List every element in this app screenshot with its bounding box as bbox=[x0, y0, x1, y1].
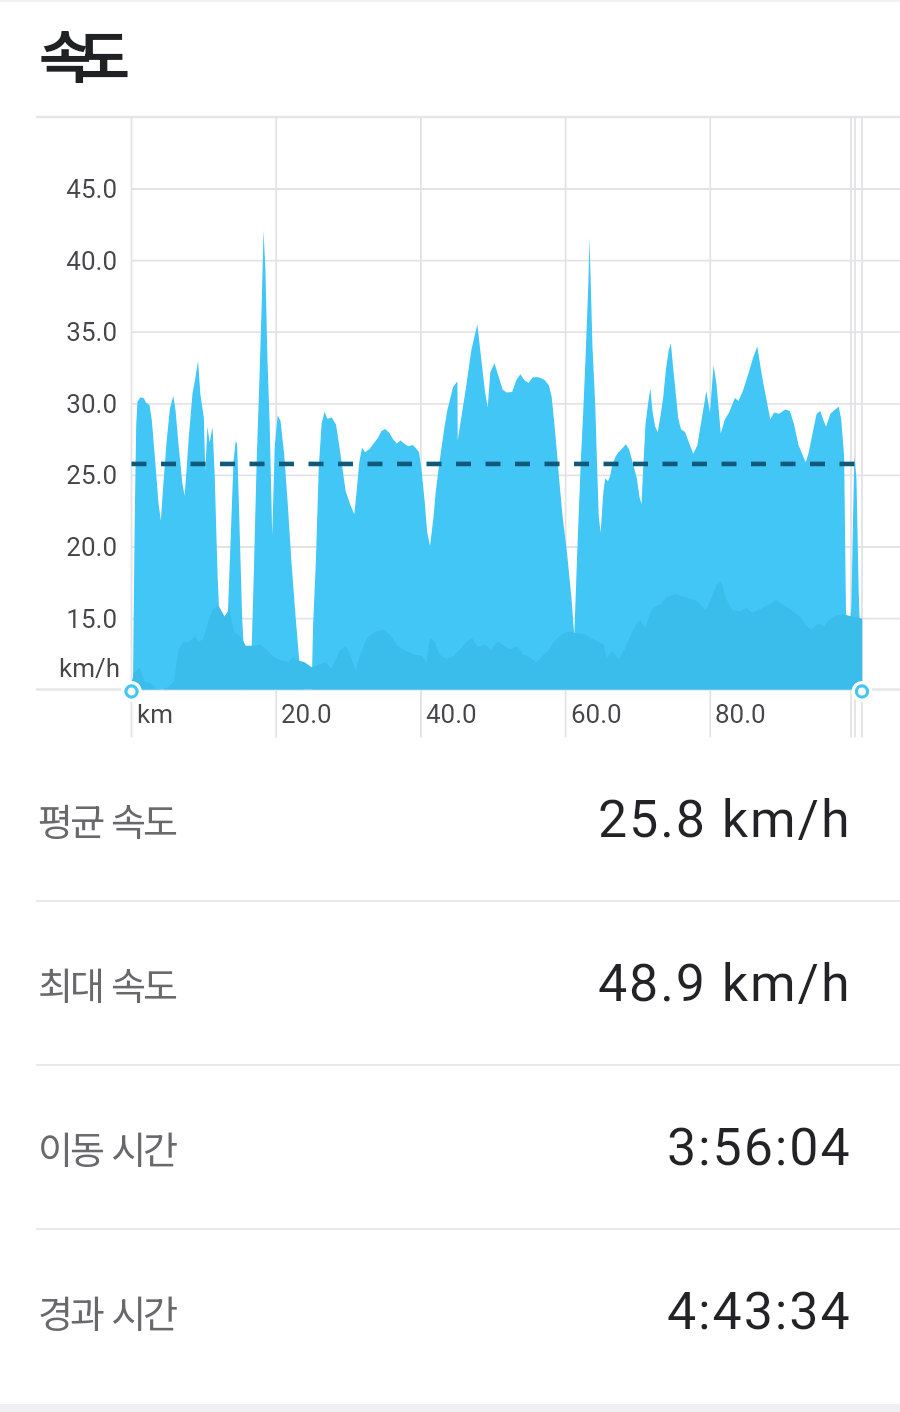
staticText: 25.8 km/h bbox=[598, 789, 852, 850]
staticText: 60.0 bbox=[571, 699, 622, 729]
staticText: km bbox=[137, 699, 173, 729]
staticText: 35.0 bbox=[66, 317, 117, 347]
staticText: 이동 bbox=[38, 1120, 102, 1175]
staticText: 25.0 bbox=[66, 460, 117, 490]
staticText: 30.0 bbox=[66, 389, 117, 419]
staticText: 40.0 bbox=[66, 246, 117, 276]
staticText: 4:43:34 bbox=[667, 1281, 852, 1342]
staticText: 속도 bbox=[39, 12, 116, 95]
staticText: 48.9 km/h bbox=[598, 953, 852, 1014]
staticText: 45.0 bbox=[66, 174, 117, 204]
staticText: 시간 bbox=[111, 1120, 175, 1175]
staticText: 경과 bbox=[38, 1284, 102, 1339]
staticText: 80.0 bbox=[715, 699, 766, 729]
button[interactable]: 평균 bbox=[0, 738, 900, 900]
staticText: 3:56:04 bbox=[667, 1117, 852, 1178]
button[interactable]: 경과 bbox=[0, 1230, 900, 1392]
button[interactable]: 최대 bbox=[0, 902, 900, 1064]
staticText: 평균 bbox=[38, 792, 102, 847]
staticText: 20.0 bbox=[66, 532, 117, 562]
staticText: 속도 bbox=[111, 956, 175, 1011]
staticText: 40.0 bbox=[426, 699, 477, 729]
staticText: 시간 bbox=[111, 1284, 175, 1339]
staticText: 속도 bbox=[111, 792, 175, 847]
staticText: km/h bbox=[59, 653, 121, 683]
staticText: 20.0 bbox=[281, 699, 332, 729]
button[interactable]: 이동 bbox=[0, 1066, 900, 1228]
staticText: 최대 bbox=[38, 956, 102, 1011]
staticText: 15.0 bbox=[66, 604, 117, 634]
